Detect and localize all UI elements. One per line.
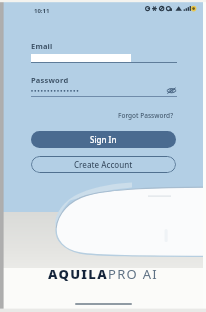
staticText: AQUILA [48, 265, 108, 283]
button[interactable]: Forgot Password? [118, 111, 174, 120]
staticText: 10:11 [34, 7, 50, 15]
button[interactable]: Create Account [31, 156, 176, 173]
button[interactable]: Sign In [31, 131, 176, 148]
other: Show password [166, 87, 177, 94]
button[interactable] [31, 54, 177, 63]
staticText: PRO AI [108, 265, 158, 283]
staticText: Email [31, 41, 53, 51]
staticText: Password [31, 75, 69, 85]
staticText: Create Account [74, 159, 133, 170]
button[interactable]: Show password [31, 85, 177, 97]
staticText: Sign In [90, 134, 117, 145]
